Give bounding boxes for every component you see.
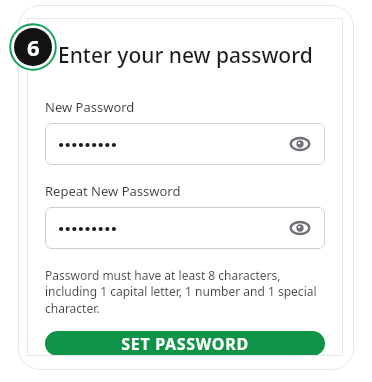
staticText: Repeat New Password	[45, 182, 181, 200]
button[interactable]: Show repeated password	[287, 215, 313, 241]
button[interactable]: Show new password	[45, 123, 325, 165]
button[interactable]: SET PASSWORD	[45, 331, 325, 356]
button[interactable]: Show repeated password	[45, 207, 325, 249]
staticText: New Password	[45, 98, 135, 116]
staticText: Enter your new password	[58, 41, 313, 70]
staticText: 6	[27, 32, 40, 62]
staticText: SET PASSWORD	[121, 333, 249, 355]
button[interactable]: Show new password	[287, 131, 313, 157]
staticText: Password must have at least 8 characters…	[45, 267, 325, 317]
